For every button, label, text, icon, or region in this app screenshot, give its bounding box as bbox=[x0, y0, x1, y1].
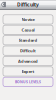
staticText: Standard bbox=[18, 37, 37, 43]
staticText: Difficulty bbox=[17, 1, 39, 8]
button[interactable]: Casual bbox=[3, 25, 53, 34]
button[interactable]: Difficult bbox=[3, 46, 53, 55]
button[interactable]: Standard bbox=[3, 36, 53, 45]
staticText: BONUS LEVELS bbox=[15, 79, 41, 84]
staticText: Expert bbox=[21, 69, 34, 74]
staticText: Difficult bbox=[20, 48, 36, 53]
staticText: Casual bbox=[21, 27, 34, 33]
button[interactable]: Expert bbox=[3, 67, 53, 76]
button[interactable]: BONUS LEVELS bbox=[3, 77, 53, 86]
staticText: Advanced bbox=[18, 58, 38, 64]
staticText: Novice bbox=[21, 17, 34, 22]
button[interactable]: Advanced bbox=[3, 56, 53, 66]
button[interactable]: Back bbox=[0, 1, 6, 7]
button[interactable]: Novice bbox=[3, 15, 53, 24]
